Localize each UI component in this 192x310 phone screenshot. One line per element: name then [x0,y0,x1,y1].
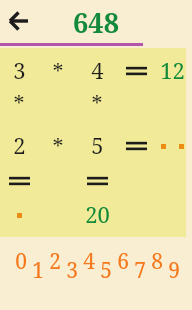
staticText: 2 [49,247,61,275]
button[interactable]: 2 [2,130,36,160]
staticText: 8 [151,247,163,275]
staticText: 5 [100,256,112,284]
staticText: 0 [15,247,27,275]
staticText: 12 [160,55,185,85]
staticText: 4 [83,247,95,275]
button[interactable]: 2 [46,247,64,275]
staticText: * [52,56,64,86]
staticText: 5 [91,130,104,160]
staticText: 2 [13,130,26,160]
button[interactable]: 1 [29,256,47,284]
staticText: * [91,88,103,118]
button[interactable]: 4 [80,55,114,85]
staticText: 3 [66,256,78,284]
button[interactable]: 5 [97,256,115,284]
staticText: 20 [85,199,110,229]
button[interactable]: * [2,88,36,118]
button[interactable]: 4 [80,247,98,275]
staticText: 9 [168,256,180,284]
button[interactable]: * [41,131,75,161]
button[interactable]: 9 [165,256,183,284]
button[interactable]: 6 [114,247,132,275]
button[interactable]: 3 [63,256,81,284]
staticText: * [52,131,64,161]
button[interactable]: 20 [77,199,117,229]
staticText: 1 [32,256,44,284]
staticText: 3 [13,55,26,85]
button[interactable]: 8 [148,247,166,275]
staticText: 4 [91,55,104,85]
staticText: 648 [73,4,119,40]
button[interactable]: 12 [153,55,191,85]
button[interactable]: 5 [80,130,114,160]
button[interactable]: * [41,56,75,86]
button[interactable]: 0 [12,247,30,275]
button[interactable]: * [80,88,114,118]
staticText: * [13,88,25,118]
button[interactable]: 7 [131,256,149,284]
button[interactable]: 3 [2,55,36,85]
staticText: 7 [134,256,146,284]
button[interactable]: Back [3,8,35,34]
staticText: 6 [117,247,129,275]
